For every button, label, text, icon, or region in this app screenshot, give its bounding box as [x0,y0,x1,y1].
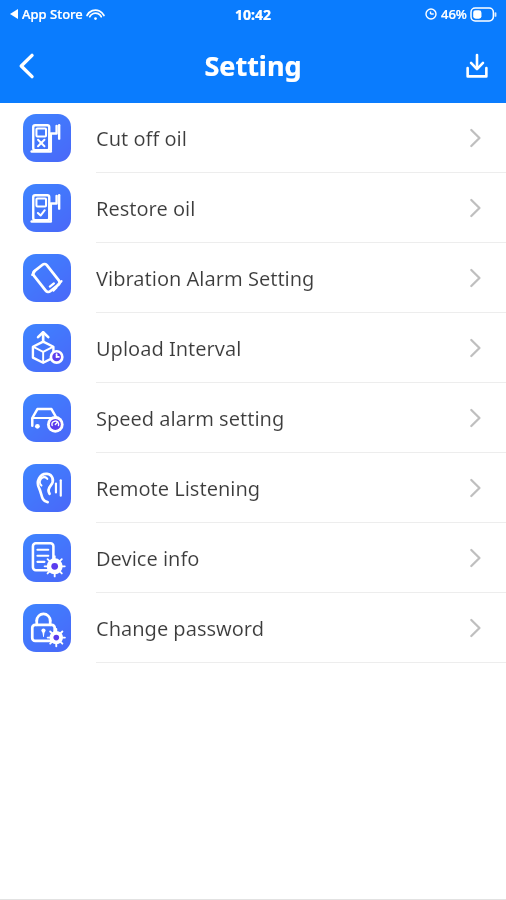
button[interactable]: Remote Listening [0,453,506,523]
staticText: Vibration Alarm Setting [96,265,444,292]
staticText: 10:42 [235,5,271,24]
staticText: Device info [96,545,444,572]
button[interactable]: Download [448,37,506,95]
staticText: Change password [96,615,444,642]
staticText: Cut off oil [96,125,444,152]
button[interactable]: Device info [0,523,506,593]
button[interactable]: Vibration Alarm Setting [0,243,506,313]
button[interactable]: Speed alarm setting [0,383,506,453]
staticText: Setting [204,47,302,84]
button[interactable]: Restore oil [0,173,506,243]
staticText: Restore oil [96,195,444,222]
staticText: 46% [441,5,467,23]
staticText: Speed alarm setting [96,405,444,432]
staticText: Upload Interval [96,335,444,362]
button[interactable]: Back [0,39,54,93]
button[interactable]: Cut off oil [0,103,506,173]
button[interactable]: Upload Interval [0,313,506,383]
staticText: App Store [22,5,83,23]
button[interactable]: Change password [0,593,506,663]
staticText: Remote Listening [96,475,444,502]
